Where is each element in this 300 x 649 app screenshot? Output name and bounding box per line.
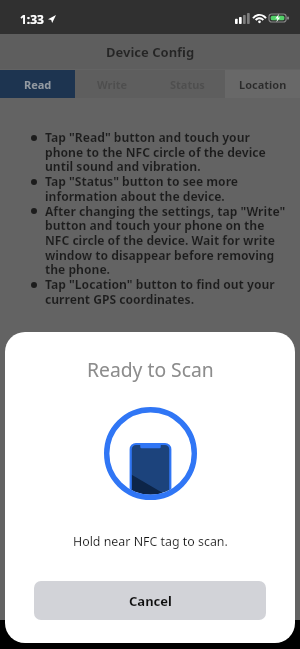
staticText: Tap "Read" button and touch your [45, 129, 250, 145]
staticText: Read [24, 77, 52, 92]
staticText: Ready to Scan [87, 356, 214, 382]
staticText: until sound and vibration. [45, 158, 201, 174]
staticText: the phone. [45, 261, 111, 277]
button[interactable]: Write [75, 70, 150, 98]
staticText: button and touch your phone on the [45, 217, 265, 233]
staticText: Write [97, 77, 128, 92]
staticText: current GPS coordinates. [45, 291, 195, 307]
button[interactable]: Status [150, 70, 225, 98]
button[interactable]: Cancel [34, 581, 266, 620]
staticText: NFC circle of the device. Wait for write [45, 232, 275, 248]
staticText: window to disappear before removing [45, 247, 275, 263]
button[interactable]: Read [0, 70, 75, 98]
staticText: information about the device. [45, 188, 225, 204]
staticText: Device Config [106, 43, 195, 61]
staticText: After changing the settings, tap "Write" [45, 203, 286, 219]
staticText: Tap "Status" button to see more [45, 173, 239, 189]
button[interactable]: Location [225, 70, 300, 98]
staticText: 1:33 [20, 11, 44, 27]
staticText: phone to the NFC circle of the device [45, 144, 266, 160]
staticText: Hold near NFC tag to scan. [73, 533, 228, 550]
staticText: Cancel [129, 592, 172, 610]
staticText: Status [170, 77, 205, 92]
staticText: Location [239, 77, 287, 92]
staticText: Tap "Location" button to find out your [45, 276, 275, 292]
